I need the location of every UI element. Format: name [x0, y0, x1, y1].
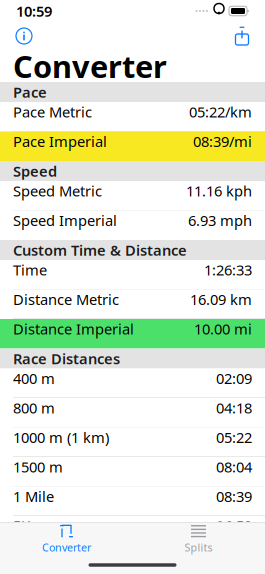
button[interactable]: 5K — [0, 516, 265, 545]
button[interactable]: Distance Metric — [0, 289, 265, 319]
staticText: 1000 m (1 km) — [13, 427, 109, 447]
staticText: Pace Metric — [13, 102, 92, 121]
staticText: Converter — [13, 46, 167, 86]
staticText: 04:18 — [216, 398, 252, 417]
button[interactable]: 10K — [0, 545, 265, 574]
staticText: 05:22/km — [189, 102, 252, 121]
staticText: Speed Imperial — [13, 210, 117, 230]
staticText: 05:22 — [216, 427, 252, 447]
staticText: Race Distances — [13, 349, 120, 368]
staticText: Custom Time & Distance — [13, 240, 187, 260]
staticText: 08:04 — [216, 457, 252, 476]
button[interactable]: 800 m — [0, 398, 265, 427]
staticText: Splits — [184, 540, 212, 554]
staticText: 16.09 km — [190, 289, 252, 309]
button[interactable]: 1000 m (1 km) — [0, 427, 265, 457]
staticText: 1:26:33 — [204, 260, 252, 279]
button[interactable]: 400 m — [0, 368, 265, 398]
staticText: 02:09 — [216, 368, 252, 388]
staticText: 11.16 kph — [186, 181, 252, 200]
staticText: 10:59 — [16, 1, 52, 21]
button[interactable]: Time — [0, 260, 265, 289]
button[interactable]: Converter — [0, 523, 132, 556]
staticText: 10.00 mi — [194, 319, 252, 338]
staticText: Pace Imperial — [13, 131, 107, 151]
button[interactable]: 1500 m — [0, 457, 265, 486]
button[interactable]: Speed Imperial — [0, 210, 265, 240]
button[interactable]: Splits — [132, 523, 264, 556]
staticText: Speed Metric — [13, 181, 102, 200]
staticText: 1500 m — [13, 457, 63, 476]
staticText: 26:53 — [216, 516, 252, 535]
button[interactable]: Share — [232, 26, 252, 46]
staticText: 400 m — [13, 368, 55, 388]
staticText: Distance Metric — [13, 289, 119, 309]
staticText: 1 Mile — [13, 486, 54, 506]
staticText: Converter — [42, 540, 91, 554]
staticText: Pace — [13, 82, 47, 102]
staticText: Time — [13, 260, 47, 279]
staticText: Distance Imperial — [13, 319, 134, 338]
staticText: 800 m — [13, 398, 55, 417]
button[interactable]: 1 Mile — [0, 486, 265, 516]
staticText: 08:39 — [216, 486, 252, 506]
staticText: 08:39/mi — [193, 131, 252, 151]
staticText: 6.93 mph — [188, 210, 252, 230]
button[interactable]: Speed Metric — [0, 181, 265, 210]
staticText: 5K — [13, 516, 30, 535]
button[interactable]: Distance Imperial — [0, 319, 265, 348]
button[interactable]: Information — [13, 25, 35, 47]
button[interactable]: Pace Metric — [0, 102, 265, 131]
button[interactable]: Pace Imperial — [0, 131, 265, 161]
staticText: Speed — [13, 161, 57, 181]
